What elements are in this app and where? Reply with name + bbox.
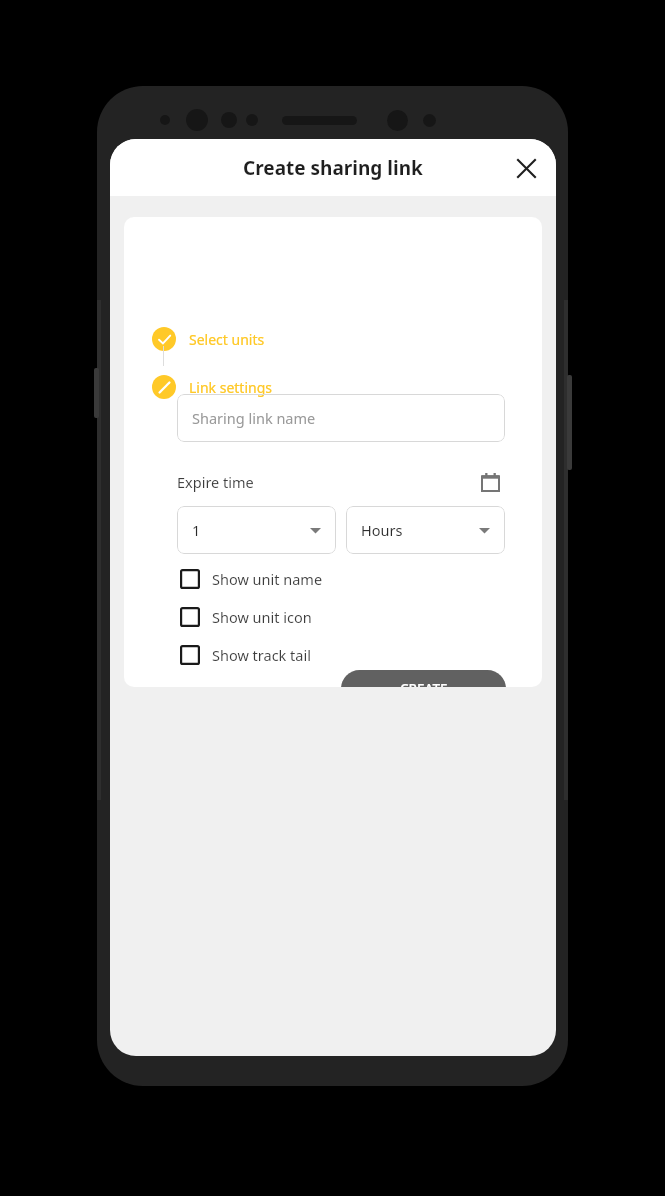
button[interactable]: Hours [346,506,505,554]
button[interactable]: Show track tail [180,640,311,670]
staticText: Create sharing link [243,155,423,181]
button[interactable]: Select units [152,322,265,356]
staticText: Show track tail [212,645,311,665]
staticText: Link settings [189,378,273,397]
staticText: Show unit icon [212,607,312,627]
staticText: Show unit name [212,569,323,589]
staticText: 1 [192,520,201,540]
button[interactable]: Show unit icon [180,602,312,632]
button[interactable]: Pick date [475,467,505,497]
staticText: Select units [189,330,265,349]
staticText: CREATE [400,680,448,687]
button[interactable]: 1 [177,506,336,554]
button[interactable]: Show unit name [180,564,323,594]
button[interactable]: Close [504,146,548,190]
button[interactable]: CREATE [341,670,506,687]
staticText: Sharing link name [192,408,316,428]
button[interactable]: Sharing link name [177,394,505,442]
button[interactable]: Link settings [152,370,273,404]
staticText: Expire time [177,472,254,492]
staticText: Hours [361,520,403,540]
